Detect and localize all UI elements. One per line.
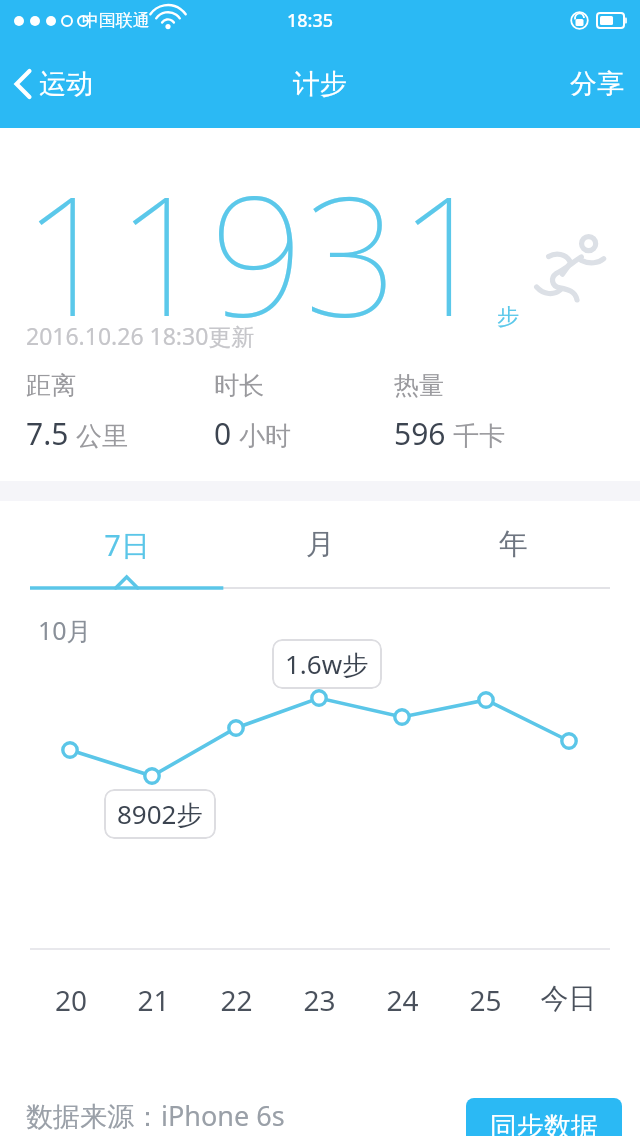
button[interactable]: 分享 xyxy=(554,57,640,111)
staticText: 千卡 xyxy=(453,420,505,453)
staticText: 距离 xyxy=(26,370,76,401)
staticText: 24 xyxy=(361,981,444,1019)
button[interactable]: 运动 xyxy=(0,59,107,109)
staticText: 20 xyxy=(30,981,112,1019)
staticText: 1.6w步 xyxy=(285,646,369,682)
staticText: 时长 xyxy=(214,370,264,401)
staticText: 同步数据 xyxy=(490,1110,598,1136)
staticText: 公里 xyxy=(76,420,128,453)
staticText: 21 xyxy=(112,981,195,1019)
staticText: 中国联通 xyxy=(82,10,150,31)
staticText: 7.5 xyxy=(26,413,69,454)
staticText: 7日 xyxy=(104,525,150,565)
staticText: 热量 xyxy=(394,370,444,401)
staticText: 运动 xyxy=(39,67,93,101)
staticText: 分享 xyxy=(570,67,624,101)
button[interactable]: 月 xyxy=(224,501,417,588)
staticText: 步 xyxy=(497,303,519,331)
staticText: 月 xyxy=(306,526,335,563)
staticText: 0 xyxy=(214,413,232,454)
staticText: 今日 xyxy=(527,981,610,1016)
staticText: 11931 xyxy=(22,140,493,365)
button[interactable]: 年 xyxy=(417,501,610,588)
staticText: 25 xyxy=(444,981,527,1019)
staticText: 10月 xyxy=(38,613,92,647)
staticText: 596 xyxy=(394,413,446,454)
staticText: 小时 xyxy=(239,420,291,453)
staticText: 18:35 xyxy=(287,8,334,33)
button[interactable]: 同步数据 xyxy=(466,1098,622,1136)
staticText: 22 xyxy=(195,981,278,1019)
staticText: 年 xyxy=(499,526,528,563)
staticText: 计步 xyxy=(293,67,347,101)
button[interactable]: 7日 xyxy=(30,501,224,588)
staticText: 2016.10.26 18:30更新 xyxy=(26,320,255,351)
staticText: 23 xyxy=(278,981,361,1019)
staticText: 数据来源：iPhone 6s xyxy=(26,1097,285,1134)
staticText: 8902步 xyxy=(117,796,203,832)
